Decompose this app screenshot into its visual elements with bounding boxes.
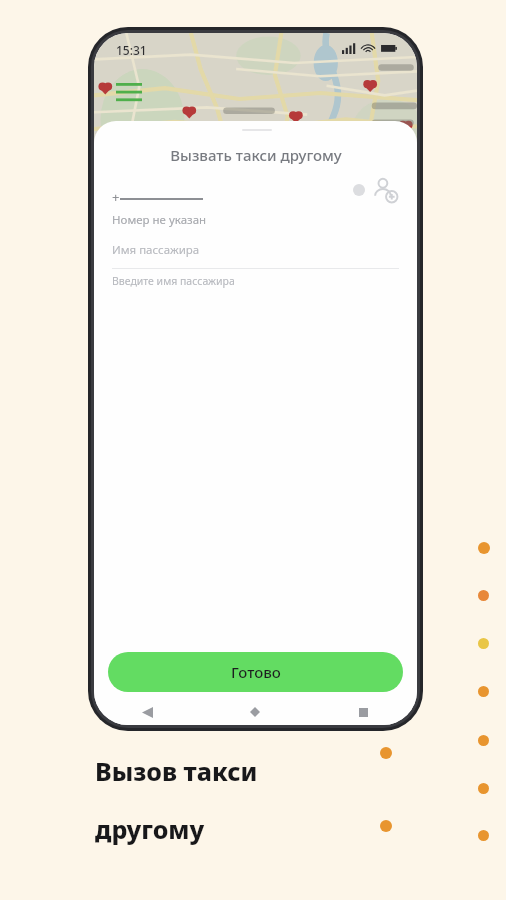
button[interactable]: Готово — [108, 652, 403, 692]
staticText: Вызвать такси другому — [170, 145, 342, 165]
button[interactable]: Clear — [353, 184, 365, 196]
staticText: Введите имя пассажира — [112, 274, 235, 288]
staticText: Готово — [231, 662, 281, 682]
button[interactable]: Add contact — [372, 177, 398, 203]
staticText: 15:31 — [116, 42, 147, 58]
button[interactable]: Home — [201, 699, 309, 725]
button[interactable]: Back — [94, 699, 201, 725]
staticText: Номер не указан — [112, 212, 207, 228]
staticText: + — [112, 188, 120, 206]
staticText: Вызов такси — [95, 754, 258, 788]
button[interactable]: Menu — [116, 83, 142, 103]
staticText: другому — [95, 812, 205, 846]
button[interactable]: Recent apps — [309, 699, 417, 725]
staticText: Имя пассажира — [112, 242, 200, 258]
button[interactable]: + — [112, 183, 399, 217]
